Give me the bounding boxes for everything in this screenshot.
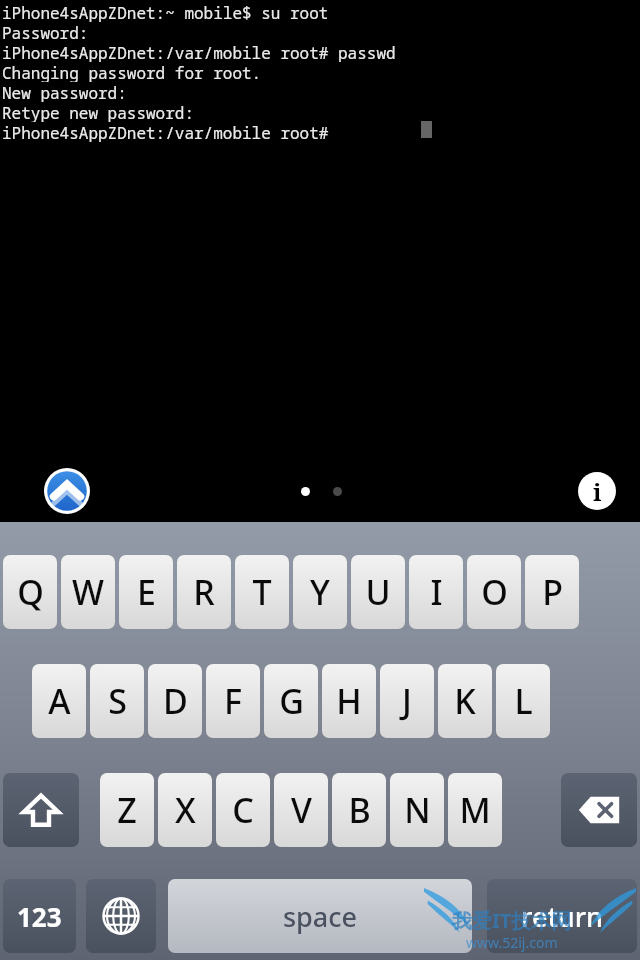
button[interactable]: A [32,664,86,738]
staticText: iPhone4sAppZDnet:/var/mobile root# [2,122,339,142]
staticText: U [365,569,391,615]
staticText: E [137,569,156,615]
button[interactable]: G [264,664,318,738]
button[interactable]: R [177,555,231,629]
staticText: iPhone4sAppZDnet:/var/mobile root# passw… [2,42,396,62]
staticText: H [336,678,362,724]
staticText: L [514,678,533,724]
button[interactable]: Info [578,472,616,510]
staticText: A [48,678,71,724]
button[interactable]: D [148,664,202,738]
staticText: D [163,678,188,724]
staticText: space [283,898,358,935]
button[interactable]: Z [100,773,154,847]
button[interactable]: L [496,664,550,738]
button[interactable]: U [351,555,405,629]
staticText: F [224,678,242,724]
button[interactable]: C [216,773,270,847]
button[interactable] [301,487,310,496]
staticText: 123 [17,899,62,934]
button[interactable]: T [235,555,289,629]
button[interactable]: Change keyboard language [86,879,156,953]
button[interactable]: E [119,555,173,629]
button[interactable]: S [90,664,144,738]
staticText: Y [310,569,330,615]
staticText: J [402,678,412,724]
button[interactable]: Y [293,555,347,629]
staticText: i [593,475,602,508]
button[interactable]: Shift [3,773,79,847]
staticText: C [232,787,254,833]
button[interactable] [333,487,342,496]
button[interactable]: W [61,555,115,629]
staticText: G [279,678,304,724]
staticText: Q [17,569,44,615]
button[interactable]: H [322,664,376,738]
button[interactable]: 123 [3,879,76,953]
button[interactable]: N [390,773,444,847]
staticText: S [108,678,127,724]
button[interactable]: P [525,555,579,629]
staticText: Z [117,787,137,833]
staticText: Changing password for root. [2,62,262,82]
button[interactable]: K [438,664,492,738]
staticText: Retype new password: [2,102,195,122]
button[interactable]: space [168,879,472,953]
staticText: P [542,569,563,615]
button[interactable]: Backspace [561,773,637,847]
staticText: iPhone4sAppZDnet:~ mobile$ su root [2,2,329,22]
button[interactable]: M [448,773,502,847]
staticText: T [252,569,272,615]
button[interactable]: Q [3,555,57,629]
button[interactable]: X [158,773,212,847]
staticText: K [454,678,476,724]
staticText: B [348,787,371,833]
staticText: V [291,787,312,833]
staticText: Password: [2,22,89,42]
staticText: X [175,787,196,833]
staticText: www.52ij.com [466,933,558,952]
button[interactable]: O [467,555,521,629]
button[interactable]: J [380,664,434,738]
staticText: M [459,787,491,833]
staticText: 我爱IT技术网 [452,907,572,934]
button[interactable]: Show keyboard [44,468,90,514]
staticText: O [481,569,508,615]
button[interactable]: return [487,879,637,953]
staticText: W [72,569,104,615]
staticText: R [193,569,215,615]
button[interactable]: I [409,555,463,629]
staticText: N [404,787,431,833]
button[interactable]: V [274,773,328,847]
staticText: I [430,569,443,615]
button[interactable]: F [206,664,260,738]
button[interactable]: B [332,773,386,847]
staticText: return [521,898,603,935]
staticText: New password: [2,82,127,102]
